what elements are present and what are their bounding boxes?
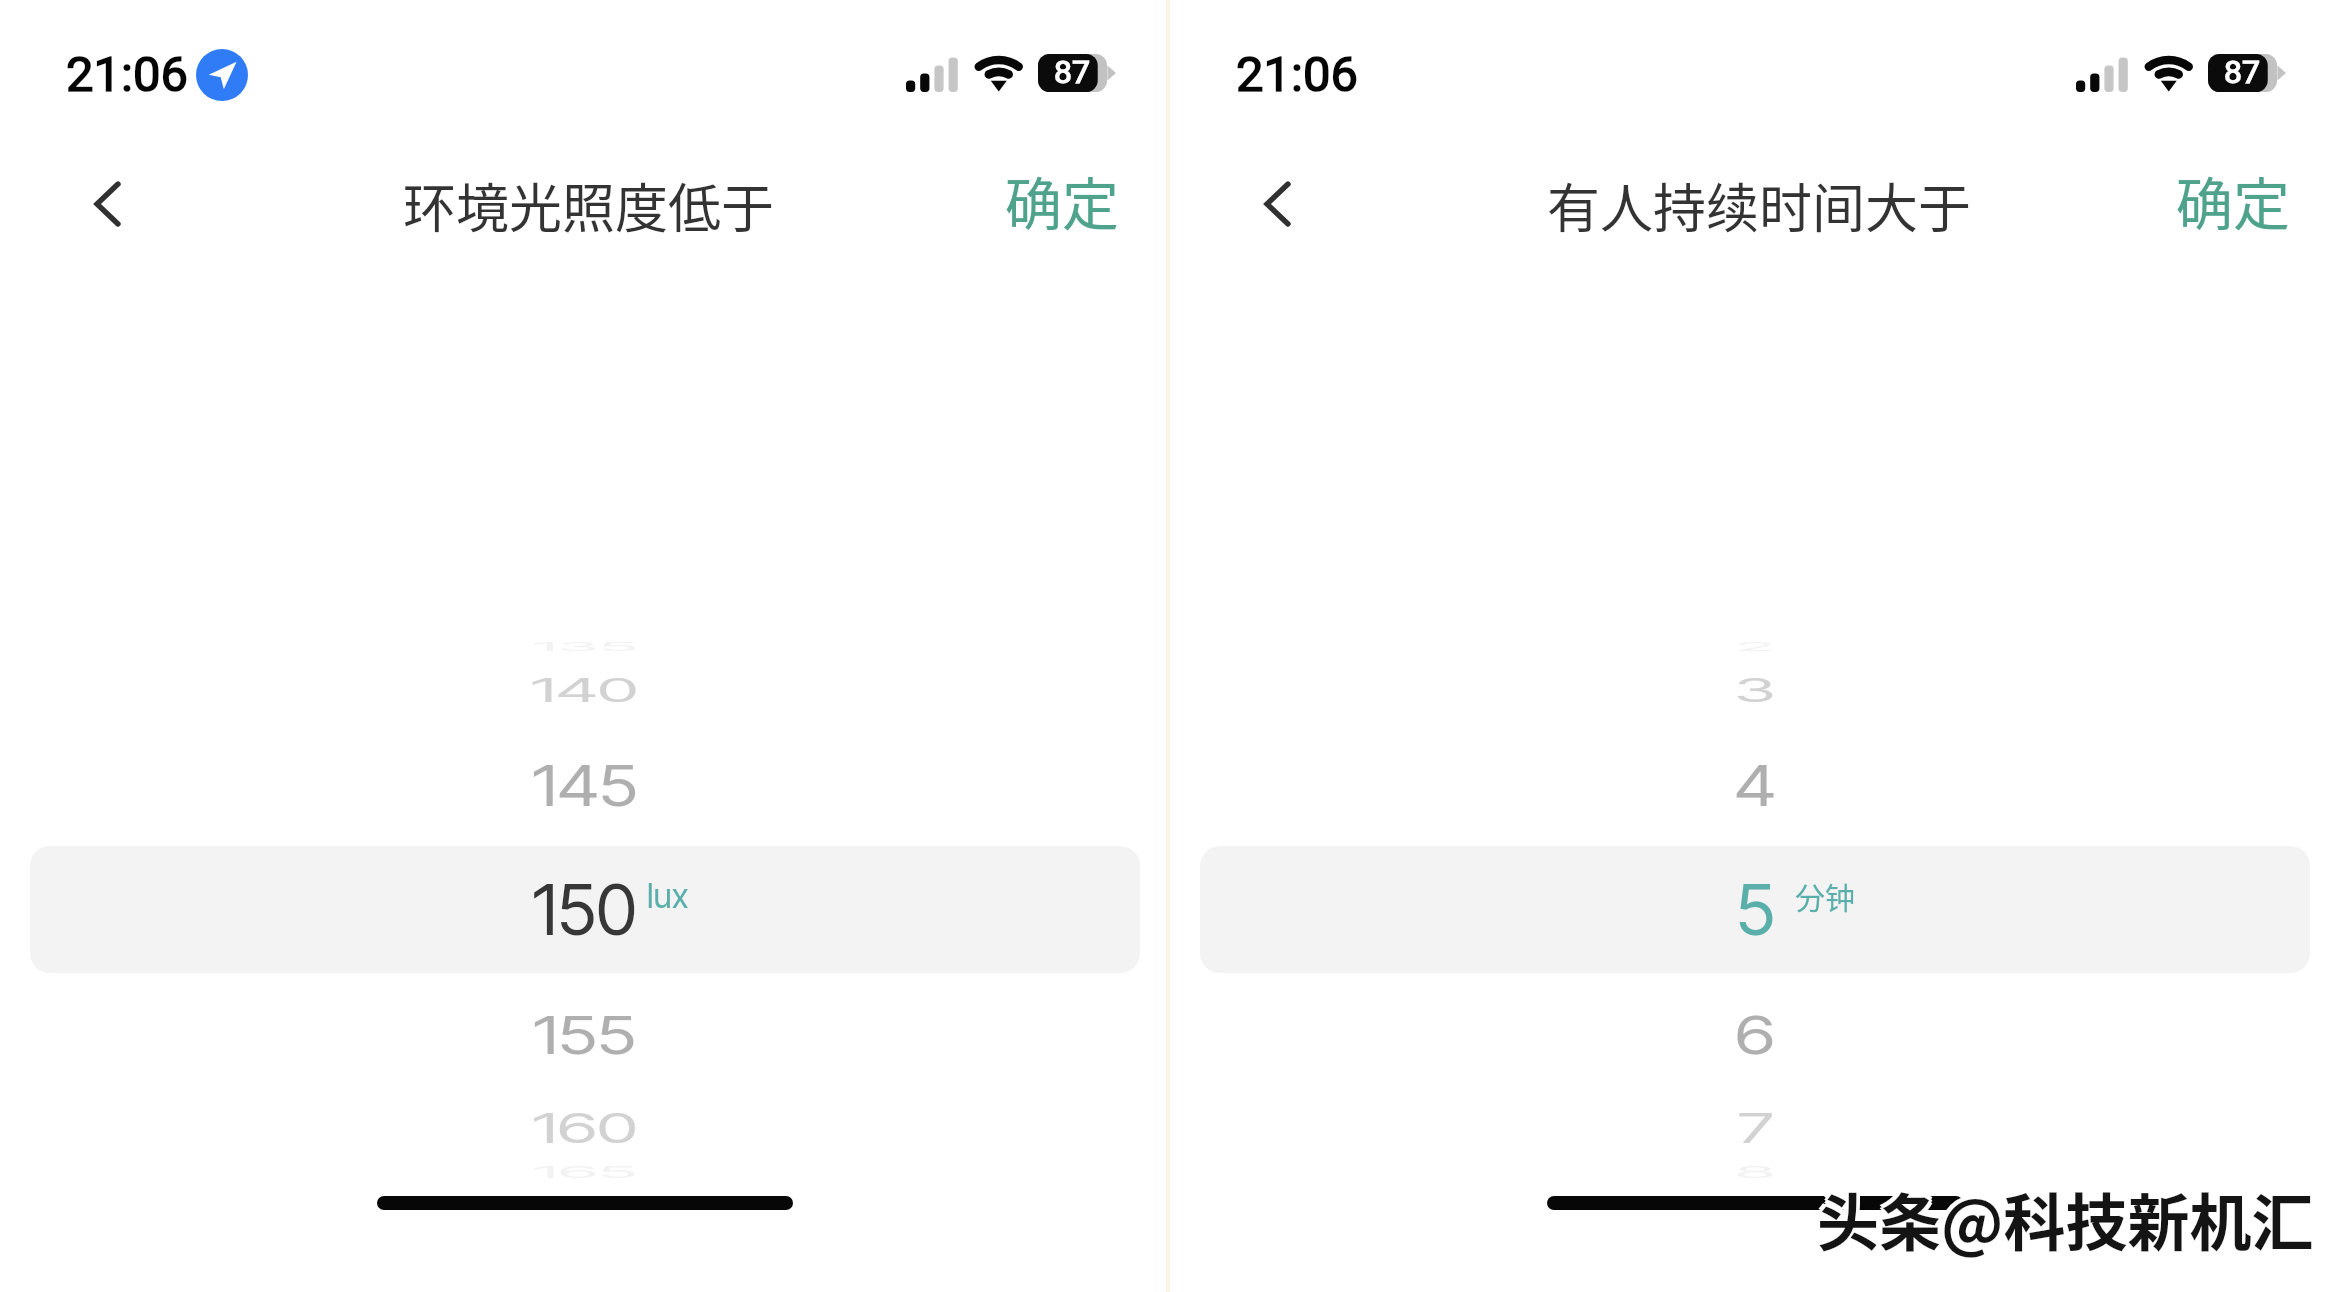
staticText: 3 [1734,671,1776,710]
button[interactable]: 7 [1170,1062,2340,1194]
button[interactable]: 4 [1170,719,2340,851]
staticText: 头条@科技新机汇 [1814,1174,2311,1264]
other: Location in use [196,49,248,101]
staticText: 145 [532,752,638,819]
staticText: 头条@科技新机汇 [1817,1174,2314,1264]
staticText: 2 [1735,638,1775,655]
other: Wi-Fi [969,44,1029,94]
staticText: 头条@科技新机汇 [1814,1177,2311,1267]
staticText: 140 [531,671,638,710]
staticText: 头条@科技新机汇 [1817,1171,2314,1261]
other: Battery 87 percent [1038,54,1116,92]
button[interactable]: 160 [0,1062,1169,1194]
button[interactable]: 5 [1170,843,2340,975]
staticText: 有人持续时间大于 [1547,167,1971,244]
staticText: 87 [2224,53,2260,91]
button[interactable]: 145 [0,719,1169,851]
staticText: 头条@科技新机汇 [1814,1171,2311,1261]
button[interactable]: 6 [1170,969,2340,1101]
button[interactable]: Back [57,154,157,254]
other: Wi-Fi [2139,44,2199,94]
staticText: 4 [1734,752,1776,819]
staticText: 头条@科技新机汇 [1820,1171,2317,1261]
staticText: 头条@科技新机汇 [1820,1177,2317,1267]
staticText: 21:06 [66,46,189,103]
staticText: 环境光照度低于 [403,167,774,244]
button[interactable]: 165 [0,1106,1169,1238]
staticText: 头条@科技新机汇 [1820,1174,2317,1264]
button[interactable]: 150 [0,843,1169,975]
staticText: 21:06 [1236,46,1359,103]
button[interactable]: 140 [0,624,1169,756]
staticText: 6 [1735,1004,1775,1067]
staticText: 150 [532,867,637,952]
button[interactable]: Back [1227,154,1327,254]
staticText: 165 [533,1163,637,1182]
staticText: 155 [533,1004,636,1067]
staticText: 头条@科技新机汇 [1817,1177,2314,1267]
staticText: 87 [1054,53,1090,91]
other: Cellular signal [2076,56,2129,92]
button[interactable]: 确定 [997,147,1127,254]
staticText: 分钟 [1795,874,1855,917]
staticText: 160 [532,1104,638,1153]
other: Battery 87 percent [2208,54,2286,92]
staticText: lux [647,875,689,916]
staticText: 确定 [2176,159,2290,242]
other: Cellular signal [906,56,959,92]
staticText: 确定 [1005,159,1119,242]
button[interactable]: 135 [0,580,1169,712]
staticText: 135 [532,638,638,655]
staticText: 5 [1736,867,1775,952]
staticText: 7 [1737,1104,1774,1153]
button[interactable]: 确定 [2168,147,2298,254]
button[interactable]: 8 [1170,1106,2340,1238]
staticText: 8 [1735,1163,1775,1182]
button[interactable]: 155 [0,969,1169,1101]
